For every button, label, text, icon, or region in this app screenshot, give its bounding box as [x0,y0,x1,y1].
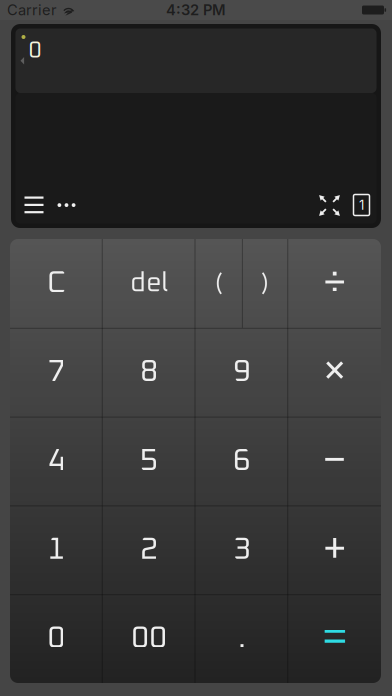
button[interactable]: ÷ [288,239,381,328]
button[interactable]: Expand [313,189,344,220]
button[interactable]: = [288,594,381,683]
staticText: 3 [233,534,251,565]
button[interactable]: Tabs [350,191,372,218]
button[interactable]: C [10,239,103,328]
button[interactable]: 0 [10,594,103,683]
staticText: 7 [47,357,65,388]
button[interactable]: ( [195,239,242,328]
staticText: 4:32 PM [166,1,226,19]
staticText: Carrier [7,1,57,19]
staticText: 00 [131,623,167,654]
button[interactable]: × [288,328,381,417]
staticText: = [322,616,348,661]
button[interactable]: 1 [10,505,103,594]
staticText: 4 [47,446,65,476]
staticText: 6 [233,446,251,476]
button[interactable]: + [288,505,381,594]
staticText: 9 [233,357,251,388]
staticText: 5 [140,446,158,476]
staticText: 2 [140,534,158,565]
button[interactable]: − [288,417,381,505]
staticText: del [130,270,168,297]
button[interactable]: 6 [195,417,288,505]
button[interactable]: 2 [103,505,196,594]
staticText: + [323,529,347,570]
button[interactable]: 9 [195,328,288,417]
button[interactable]: ) [242,239,288,328]
staticText: − [323,440,347,482]
staticText: C [47,268,66,299]
button[interactable]: 5 [103,417,196,505]
button[interactable]: . [195,594,288,683]
button[interactable]: 8 [103,328,196,417]
staticText: ( [215,272,222,295]
staticText: 0 [28,39,41,62]
staticText: 0 [47,623,65,654]
button[interactable]: 00 [103,594,196,683]
button[interactable]: More [52,189,80,220]
staticText: ) [262,272,269,295]
staticText: 1 [47,534,65,565]
button[interactable]: 7 [10,328,103,417]
staticText: ÷ [323,263,347,304]
staticText: . [238,623,246,654]
staticText: 1 [359,197,364,213]
button[interactable]: del [103,239,196,328]
staticText: 8 [140,357,158,388]
button[interactable]: 4 [10,417,103,505]
button[interactable]: Menu [19,189,48,220]
button[interactable]: 3 [195,505,288,594]
staticText: × [323,351,347,393]
